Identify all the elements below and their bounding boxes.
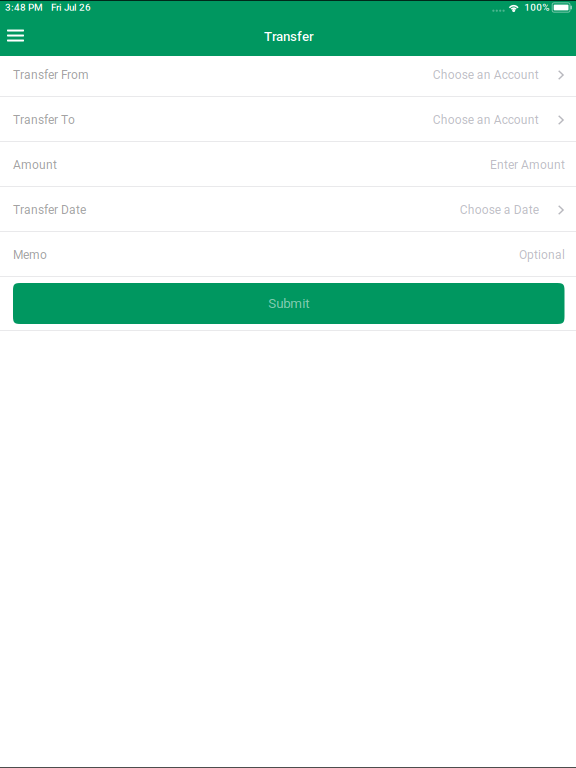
staticText: 100% bbox=[524, 2, 549, 13]
button[interactable]: Transfer From bbox=[0, 52, 576, 97]
button[interactable]: Transfer To bbox=[0, 97, 576, 142]
staticText: Transfer Date bbox=[13, 203, 86, 217]
staticText: 3:48 PM bbox=[5, 2, 43, 13]
staticText: Fri Jul 26 bbox=[51, 2, 91, 13]
staticText: Transfer To bbox=[13, 113, 75, 127]
staticText: Choose an Account bbox=[433, 113, 539, 127]
staticText: Transfer bbox=[264, 29, 314, 44]
staticText: Transfer From bbox=[13, 68, 89, 82]
button[interactable]: Memo bbox=[0, 232, 576, 277]
button[interactable]: Transfer Date bbox=[0, 187, 576, 232]
staticText: Enter Amount bbox=[490, 158, 565, 172]
staticText: Choose a Date bbox=[460, 203, 539, 217]
staticText: Choose an Account bbox=[433, 68, 539, 82]
staticText: Memo bbox=[13, 248, 47, 262]
button[interactable]: Menu bbox=[0, 15, 34, 55]
button[interactable]: Amount bbox=[0, 142, 576, 187]
staticText: Optional bbox=[519, 248, 565, 262]
staticText: Amount bbox=[13, 158, 57, 172]
staticText: Submit bbox=[268, 296, 309, 311]
button[interactable]: Submit bbox=[13, 283, 564, 324]
